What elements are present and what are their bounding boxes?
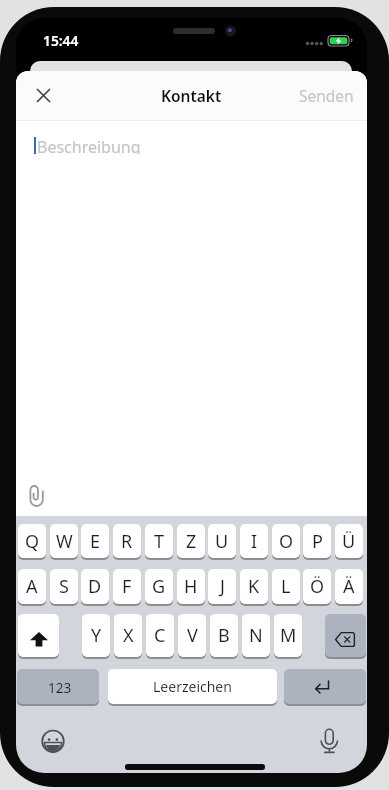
button[interactable]: Ü [335, 524, 363, 558]
staticText: W [56, 529, 73, 554]
staticText: H [184, 574, 198, 599]
staticText: O [279, 529, 294, 554]
staticText: Kontakt [161, 85, 222, 106]
button[interactable]: N [242, 614, 270, 657]
staticText: A [26, 574, 38, 599]
button[interactable]: B [210, 614, 238, 657]
staticText: Z [186, 529, 197, 554]
staticText: Y [91, 623, 102, 648]
staticText: S [59, 574, 69, 599]
button[interactable]: T [145, 524, 173, 558]
staticText: P [312, 529, 323, 554]
staticText: I [251, 529, 258, 554]
button[interactable]: Y [82, 614, 110, 657]
button[interactable]: M [274, 614, 302, 657]
staticText: 15:44 [43, 31, 79, 50]
staticText: K [248, 574, 260, 599]
staticText: C [154, 623, 166, 648]
staticText: X [123, 623, 134, 648]
staticText: G [152, 574, 166, 599]
staticText: L [281, 574, 291, 599]
button[interactable]: Ö [303, 569, 331, 604]
button[interactable]: D [81, 569, 109, 604]
button[interactable]: V [178, 614, 206, 657]
staticText: U [215, 529, 229, 554]
staticText: N [249, 623, 263, 648]
button[interactable]: P [303, 524, 331, 558]
button[interactable] [28, 81, 58, 109]
staticText: R [121, 529, 133, 554]
button[interactable] [325, 614, 366, 657]
staticText: Beschreibung [37, 136, 141, 154]
staticText: J [220, 574, 225, 599]
staticText: T [154, 529, 165, 554]
button[interactable]: X [114, 614, 142, 657]
staticText: Ä [343, 574, 355, 599]
button[interactable] [18, 614, 59, 657]
button[interactable]: C [146, 614, 174, 657]
button[interactable]: W [50, 524, 78, 558]
staticText: E [90, 529, 101, 554]
button[interactable]: J [208, 569, 236, 604]
button[interactable] [284, 669, 366, 704]
staticText: B [218, 623, 230, 648]
button[interactable]: S [50, 569, 78, 604]
staticText: M [280, 623, 297, 648]
button[interactable]: R [113, 524, 141, 558]
button[interactable]: Ä [335, 569, 363, 604]
button[interactable]: G [145, 569, 173, 604]
staticText: V [187, 623, 198, 648]
button[interactable] [16, 121, 367, 516]
button[interactable] [41, 729, 65, 754]
staticText: Ü [342, 529, 356, 554]
button[interactable]: H [177, 569, 205, 604]
button[interactable]: L [272, 569, 300, 604]
button[interactable]: K [240, 569, 268, 604]
staticText: Ö [310, 574, 325, 599]
button[interactable]: A [18, 569, 46, 604]
staticText: Q [25, 529, 40, 554]
button[interactable]: Q [18, 524, 46, 558]
button[interactable] [319, 725, 340, 755]
staticText: F [122, 574, 132, 599]
button[interactable]: O [272, 524, 300, 558]
button[interactable]: 123 [17, 669, 99, 704]
button[interactable]: Z [177, 524, 205, 558]
button[interactable]: I [240, 524, 268, 558]
staticText: D [88, 574, 102, 599]
staticText: Senden [299, 85, 354, 106]
staticText: Leerzeichen [153, 677, 232, 696]
button[interactable]: E [81, 524, 109, 558]
button[interactable]: Leerzeichen [108, 669, 277, 704]
button[interactable]: U [208, 524, 236, 558]
button[interactable]: F [113, 569, 141, 604]
button[interactable]: Senden [254, 74, 354, 116]
staticText: 123 [48, 679, 72, 697]
